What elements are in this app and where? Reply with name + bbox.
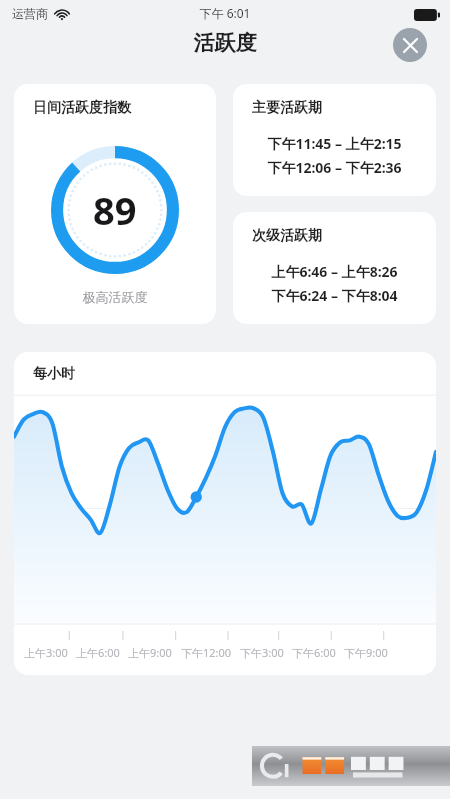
staticText: 上午9:00 [128, 645, 172, 660]
staticText: 上午3:00 [24, 645, 68, 660]
staticText: 极高活跃度 [14, 289, 216, 305]
button[interactable]: 主要活跃期 [233, 84, 436, 196]
staticText: 89 [93, 184, 137, 236]
staticText: 主要活跃期 [252, 99, 322, 117]
staticText: 上午6:46 – 上午8:26 [271, 262, 398, 281]
staticText: 每小时 [33, 365, 75, 383]
staticText: 下午 6:01 [0, 5, 450, 21]
staticText: 活跃度 [0, 30, 450, 56]
staticText: 次级活跃期 [252, 227, 322, 245]
staticText: 下午12:00 [181, 645, 232, 660]
button[interactable]: 次级活跃期 [233, 212, 436, 324]
staticText: 下午9:00 [344, 645, 388, 660]
button[interactable]: Close [393, 28, 427, 62]
staticText: 下午6:24 – 下午8:04 [271, 286, 398, 305]
staticText: 运营商 [12, 6, 48, 21]
staticText: 日间活跃度指数 [33, 99, 131, 117]
staticText: 下午3:00 [240, 645, 284, 660]
staticText: 上午6:00 [76, 645, 120, 660]
staticText: 下午12:06 – 下午2:36 [267, 158, 402, 177]
staticText: 下午11:45 – 上午2:15 [267, 134, 402, 153]
staticText: 下午6:00 [292, 645, 336, 660]
